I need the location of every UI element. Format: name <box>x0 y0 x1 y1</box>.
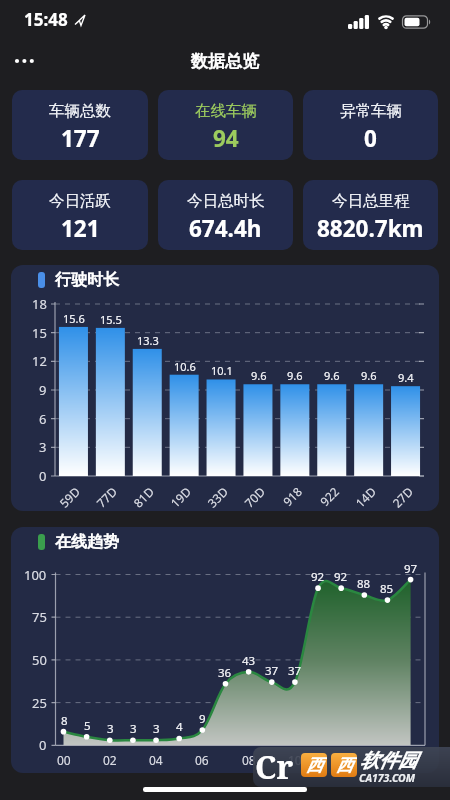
staticText: 12 <box>32 352 47 370</box>
staticText: 10.6 <box>174 359 196 373</box>
staticText: 数据总览 <box>191 51 259 72</box>
staticText: 33D <box>204 483 230 509</box>
staticText: 15.6 <box>63 311 85 325</box>
staticText: CA173.COM <box>359 771 416 785</box>
staticText: 75 <box>32 608 47 626</box>
staticText: 15:48 <box>24 8 68 31</box>
staticText: 3 <box>107 721 114 735</box>
staticText: 10 <box>288 752 302 766</box>
staticText: 08 <box>242 752 256 766</box>
staticText: 3 <box>153 721 160 735</box>
staticText: 15 <box>32 324 47 342</box>
staticText: 43 <box>242 653 256 667</box>
staticText: 27D <box>389 483 415 509</box>
staticText: 37 <box>265 663 279 677</box>
staticText: 918 <box>279 483 304 508</box>
staticText: 02 <box>103 752 117 766</box>
staticText: 9.4 <box>398 370 414 384</box>
staticText: 14D <box>352 483 378 509</box>
button[interactable]: 车辆总数 <box>12 90 148 160</box>
staticText: 软件园 <box>360 749 417 773</box>
staticText: 25 <box>32 694 47 712</box>
staticText: 100 <box>24 566 47 584</box>
staticText: 13.3 <box>137 333 159 347</box>
staticText: 行驶时长 <box>55 270 119 290</box>
button[interactable]: 今日总里程 <box>303 180 438 250</box>
staticText: 今日总时长 <box>187 191 265 211</box>
staticText: 04 <box>149 752 163 766</box>
staticText: 12 <box>334 752 348 766</box>
staticText: 6 <box>39 410 47 428</box>
staticText: 在线车辆 <box>195 101 257 121</box>
staticText: 674.4h <box>189 213 262 243</box>
staticText: 10.1 <box>211 363 233 377</box>
staticText: 今日总里程 <box>332 191 410 211</box>
button[interactable]: 在线车辆 <box>158 90 293 160</box>
staticText: 59D <box>56 483 82 509</box>
staticText: 8820.7km <box>317 213 424 243</box>
staticText: 9 <box>39 381 47 399</box>
staticText: 异常车辆 <box>340 101 402 121</box>
staticText: 4 <box>176 719 183 733</box>
staticText: 9.6 <box>287 368 303 382</box>
staticText: 92 <box>311 569 325 583</box>
button[interactable]: 异常车辆 <box>303 90 438 160</box>
staticText: 9.6 <box>251 368 267 382</box>
staticText: 85 <box>380 581 394 595</box>
staticText: 3 <box>130 721 137 735</box>
staticText: 9.6 <box>361 368 377 382</box>
staticText: 121 <box>61 213 100 243</box>
staticText: 88 <box>357 576 371 590</box>
staticText: 92 <box>334 569 348 583</box>
staticText: 06 <box>195 752 209 766</box>
button[interactable]: Cr <box>253 747 450 787</box>
staticText: 94 <box>213 123 239 153</box>
staticText: 5 <box>84 718 91 732</box>
staticText: 15.5 <box>100 312 122 326</box>
staticText: 177 <box>61 123 100 153</box>
staticText: 8 <box>61 713 68 727</box>
button[interactable] <box>8 46 48 76</box>
staticText: 车辆总数 <box>49 101 111 121</box>
staticText: 今日活跃 <box>49 191 111 211</box>
staticText: 西 <box>336 755 353 776</box>
staticText: 14 <box>380 752 394 766</box>
staticText: 3 <box>39 438 47 456</box>
staticText: 西 <box>306 755 323 776</box>
staticText: Cr <box>255 747 294 785</box>
staticText: 19D <box>167 483 193 509</box>
staticText: 70D <box>241 483 267 509</box>
staticText: 36 <box>218 665 232 679</box>
staticText: 922 <box>316 483 341 508</box>
staticText: 50 <box>32 651 47 669</box>
button[interactable]: 今日总时长 <box>158 180 293 250</box>
staticText: 0 <box>39 467 47 485</box>
staticText: 18 <box>32 295 47 313</box>
staticText: 在线趋势 <box>55 532 119 552</box>
staticText: 0 <box>39 736 47 754</box>
staticText: 37 <box>288 663 302 677</box>
staticText: 00 <box>57 752 71 766</box>
staticText: 97 <box>404 561 418 575</box>
button[interactable]: 今日活跃 <box>12 180 148 250</box>
staticText: 9.6 <box>324 368 340 382</box>
staticText: 81D <box>130 483 156 509</box>
staticText: 9 <box>199 711 206 725</box>
staticText: 0 <box>364 123 377 153</box>
staticText: 77D <box>93 483 119 509</box>
